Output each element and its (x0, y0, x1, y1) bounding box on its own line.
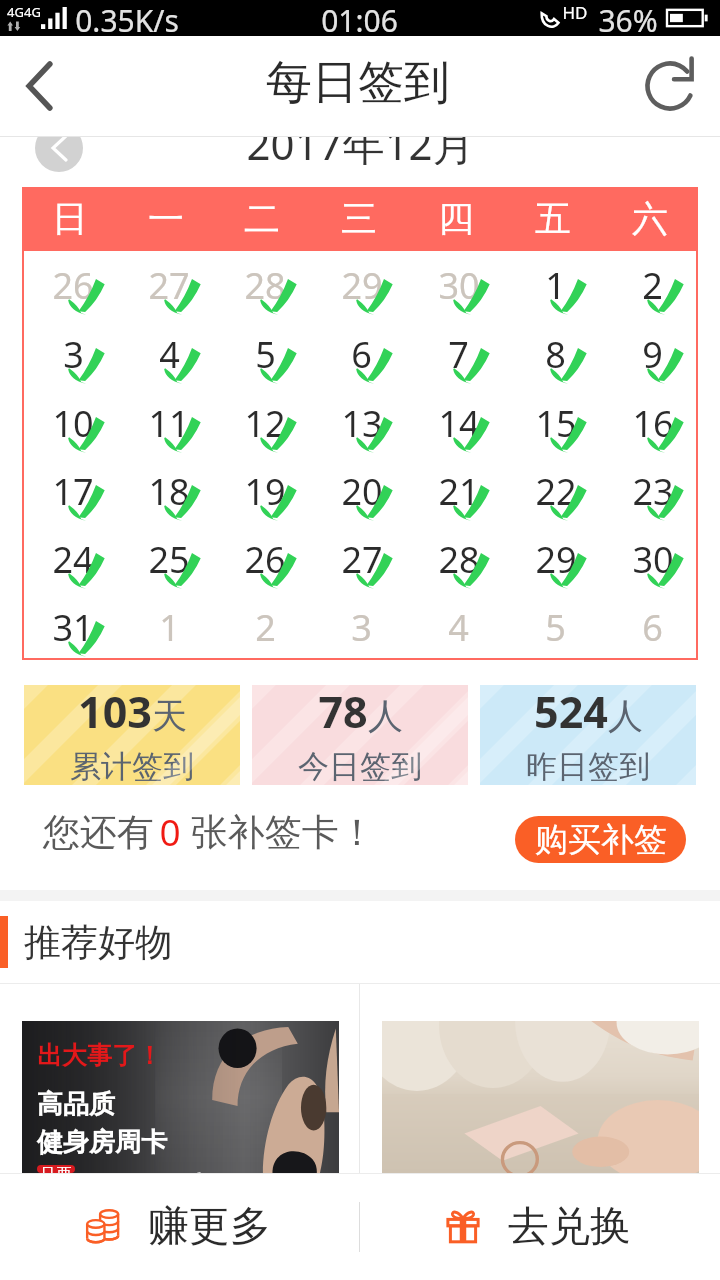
staticText: 4 (159, 330, 180, 379)
button[interactable]: 购买补签 (515, 816, 686, 863)
button[interactable]: 22 (504, 456, 601, 524)
staticText: 18 (148, 467, 190, 516)
staticText: 6 (351, 330, 372, 379)
button[interactable]: 78 (252, 685, 468, 785)
button[interactable]: 10 (22, 388, 118, 456)
button[interactable]: 4 (407, 592, 504, 660)
staticText: 二 (244, 196, 280, 241)
staticText: HD (562, 1, 588, 24)
staticText: 2 (255, 603, 276, 652)
button[interactable]: 6 (310, 319, 407, 388)
staticText: 26 (52, 261, 94, 310)
staticText: 13 (341, 399, 383, 448)
staticText: 昨日签到 (526, 747, 650, 782)
staticText: 日 (52, 196, 88, 241)
button[interactable]: 28 (407, 524, 504, 592)
staticText: 2017年12月 (246, 137, 475, 165)
staticText: 0 (159, 806, 181, 856)
button[interactable]: 出大事了！ (0, 984, 359, 1173)
button[interactable]: 4 (118, 319, 214, 388)
staticText: 六 (632, 196, 668, 241)
button[interactable]: 2 (214, 592, 310, 660)
staticText: 14 (438, 399, 480, 448)
staticText: 去兑换 (508, 1201, 631, 1253)
staticText: 高品质 (37, 1088, 115, 1121)
button[interactable]: 31 (22, 592, 118, 660)
staticText: 28 (438, 535, 480, 584)
staticText: 推荐好物 (24, 919, 172, 966)
staticText: 出大事了！ (37, 1040, 162, 1071)
staticText: 22 (535, 467, 577, 516)
staticText: 21 (438, 467, 480, 516)
button[interactable]: 12 (214, 388, 310, 456)
button[interactable]: 1 (118, 592, 214, 660)
button[interactable]: 15 (504, 388, 601, 456)
button[interactable]: 16 (601, 388, 698, 456)
staticText: 购买补签 (535, 819, 667, 861)
button[interactable]: 29 (310, 250, 407, 319)
button[interactable]: 28 (214, 250, 310, 319)
staticText: 17 (52, 467, 94, 516)
button[interactable]: 14 (407, 388, 504, 456)
button[interactable]: Refresh (626, 36, 720, 136)
button[interactable] (360, 984, 720, 1173)
staticText: 每日签到 (266, 54, 450, 112)
button[interactable]: 3 (22, 319, 118, 388)
button[interactable]: Back (0, 36, 80, 136)
staticText: 11 (148, 399, 190, 448)
staticText: 人 (608, 694, 643, 738)
button[interactable]: 去兑换 (360, 1174, 720, 1280)
staticText: 四 (438, 196, 474, 241)
button[interactable]: 26 (214, 524, 310, 592)
button[interactable]: 30 (407, 250, 504, 319)
button[interactable]: 2 (601, 250, 698, 319)
staticText: 100鸽币 (80, 1165, 203, 1173)
staticText: 2 (642, 261, 663, 310)
staticText: 29 (341, 261, 383, 310)
button[interactable]: 13 (310, 388, 407, 456)
button[interactable]: 30 (601, 524, 698, 592)
button[interactable]: 9 (601, 319, 698, 388)
staticText: 张补签卡！ (181, 805, 376, 856)
button[interactable]: 赚更多 (0, 1174, 359, 1280)
button[interactable]: 29 (504, 524, 601, 592)
staticText: 19 (244, 467, 286, 516)
button[interactable]: 25 (118, 524, 214, 592)
button[interactable]: 7 (407, 319, 504, 388)
button[interactable]: 3 (310, 592, 407, 660)
button[interactable]: 103 (24, 685, 240, 785)
staticText: 今日签到 (298, 747, 422, 782)
button[interactable]: 26 (22, 250, 118, 319)
button[interactable]: 11 (118, 388, 214, 456)
staticText: 20 (341, 467, 383, 516)
button[interactable]: Previous month (35, 137, 83, 172)
button[interactable]: 24 (22, 524, 118, 592)
staticText: 人 (368, 694, 403, 738)
button[interactable]: 5 (504, 592, 601, 660)
staticText: 6 (642, 603, 663, 652)
staticText: 31 (52, 603, 94, 652)
staticText: 1 (159, 603, 180, 652)
button[interactable]: 27 (310, 524, 407, 592)
staticText: 28 (244, 261, 286, 310)
staticText: 23 (632, 467, 674, 516)
button[interactable]: 524 (480, 685, 696, 785)
staticText: 36% (598, 0, 658, 36)
button[interactable]: 6 (601, 592, 698, 660)
button[interactable]: 17 (22, 456, 118, 524)
button[interactable]: 21 (407, 456, 504, 524)
staticText: 健身房周卡 (37, 1126, 167, 1159)
button[interactable]: 23 (601, 456, 698, 524)
staticText: 30 (438, 261, 480, 310)
button[interactable]: 5 (214, 319, 310, 388)
button[interactable]: 1 (504, 250, 601, 319)
staticText: 7 (448, 330, 469, 379)
staticText: 26 (244, 535, 286, 584)
button[interactable]: 8 (504, 319, 601, 388)
button[interactable]: 20 (310, 456, 407, 524)
button[interactable]: 19 (214, 456, 310, 524)
button[interactable]: 27 (118, 250, 214, 319)
staticText: 3 (63, 330, 84, 379)
button[interactable]: 18 (118, 456, 214, 524)
staticText: 524 (534, 682, 608, 741)
